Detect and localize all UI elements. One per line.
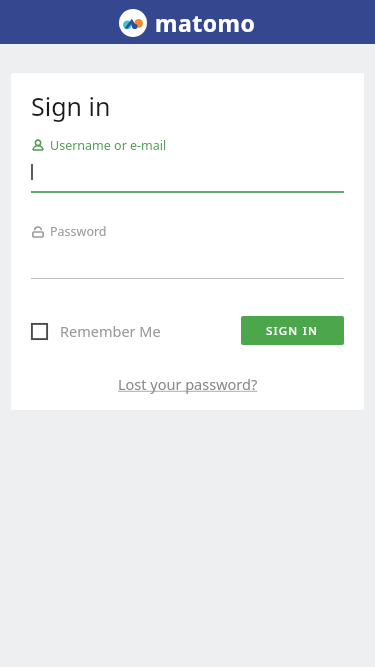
staticText: SIGN IN bbox=[266, 323, 319, 339]
button[interactable] bbox=[31, 248, 344, 279]
staticText: Password bbox=[50, 223, 107, 240]
staticText: matomo bbox=[155, 7, 256, 38]
staticText: Lost your password? bbox=[118, 374, 258, 394]
button[interactable]: Remember Me bbox=[31, 321, 161, 341]
button[interactable]: Lost your password? bbox=[118, 374, 258, 394]
other: Matomo logo bbox=[119, 9, 147, 37]
staticText: Username or e-mail bbox=[50, 137, 167, 154]
staticText: Remember Me bbox=[60, 321, 161, 341]
button[interactable] bbox=[31, 162, 344, 193]
staticText: Sign in bbox=[31, 89, 111, 123]
button[interactable]: SIGN IN bbox=[241, 316, 344, 345]
